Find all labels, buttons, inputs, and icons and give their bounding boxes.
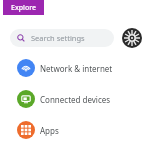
staticText: Explore: [11, 3, 37, 13]
staticText: Network & internet: [40, 63, 113, 74]
staticText: Connected devices: [40, 94, 111, 105]
button[interactable]: Explore: [3, 0, 44, 15]
button[interactable]: Network & internet: [0, 59, 150, 77]
button[interactable]: Search settings: [10, 29, 114, 47]
staticText: Apps: [40, 125, 59, 136]
button[interactable]: Connected devices: [0, 90, 150, 108]
staticText: Search settings: [31, 33, 85, 43]
button[interactable]: Account: [122, 28, 142, 48]
button[interactable]: Apps: [0, 121, 150, 139]
